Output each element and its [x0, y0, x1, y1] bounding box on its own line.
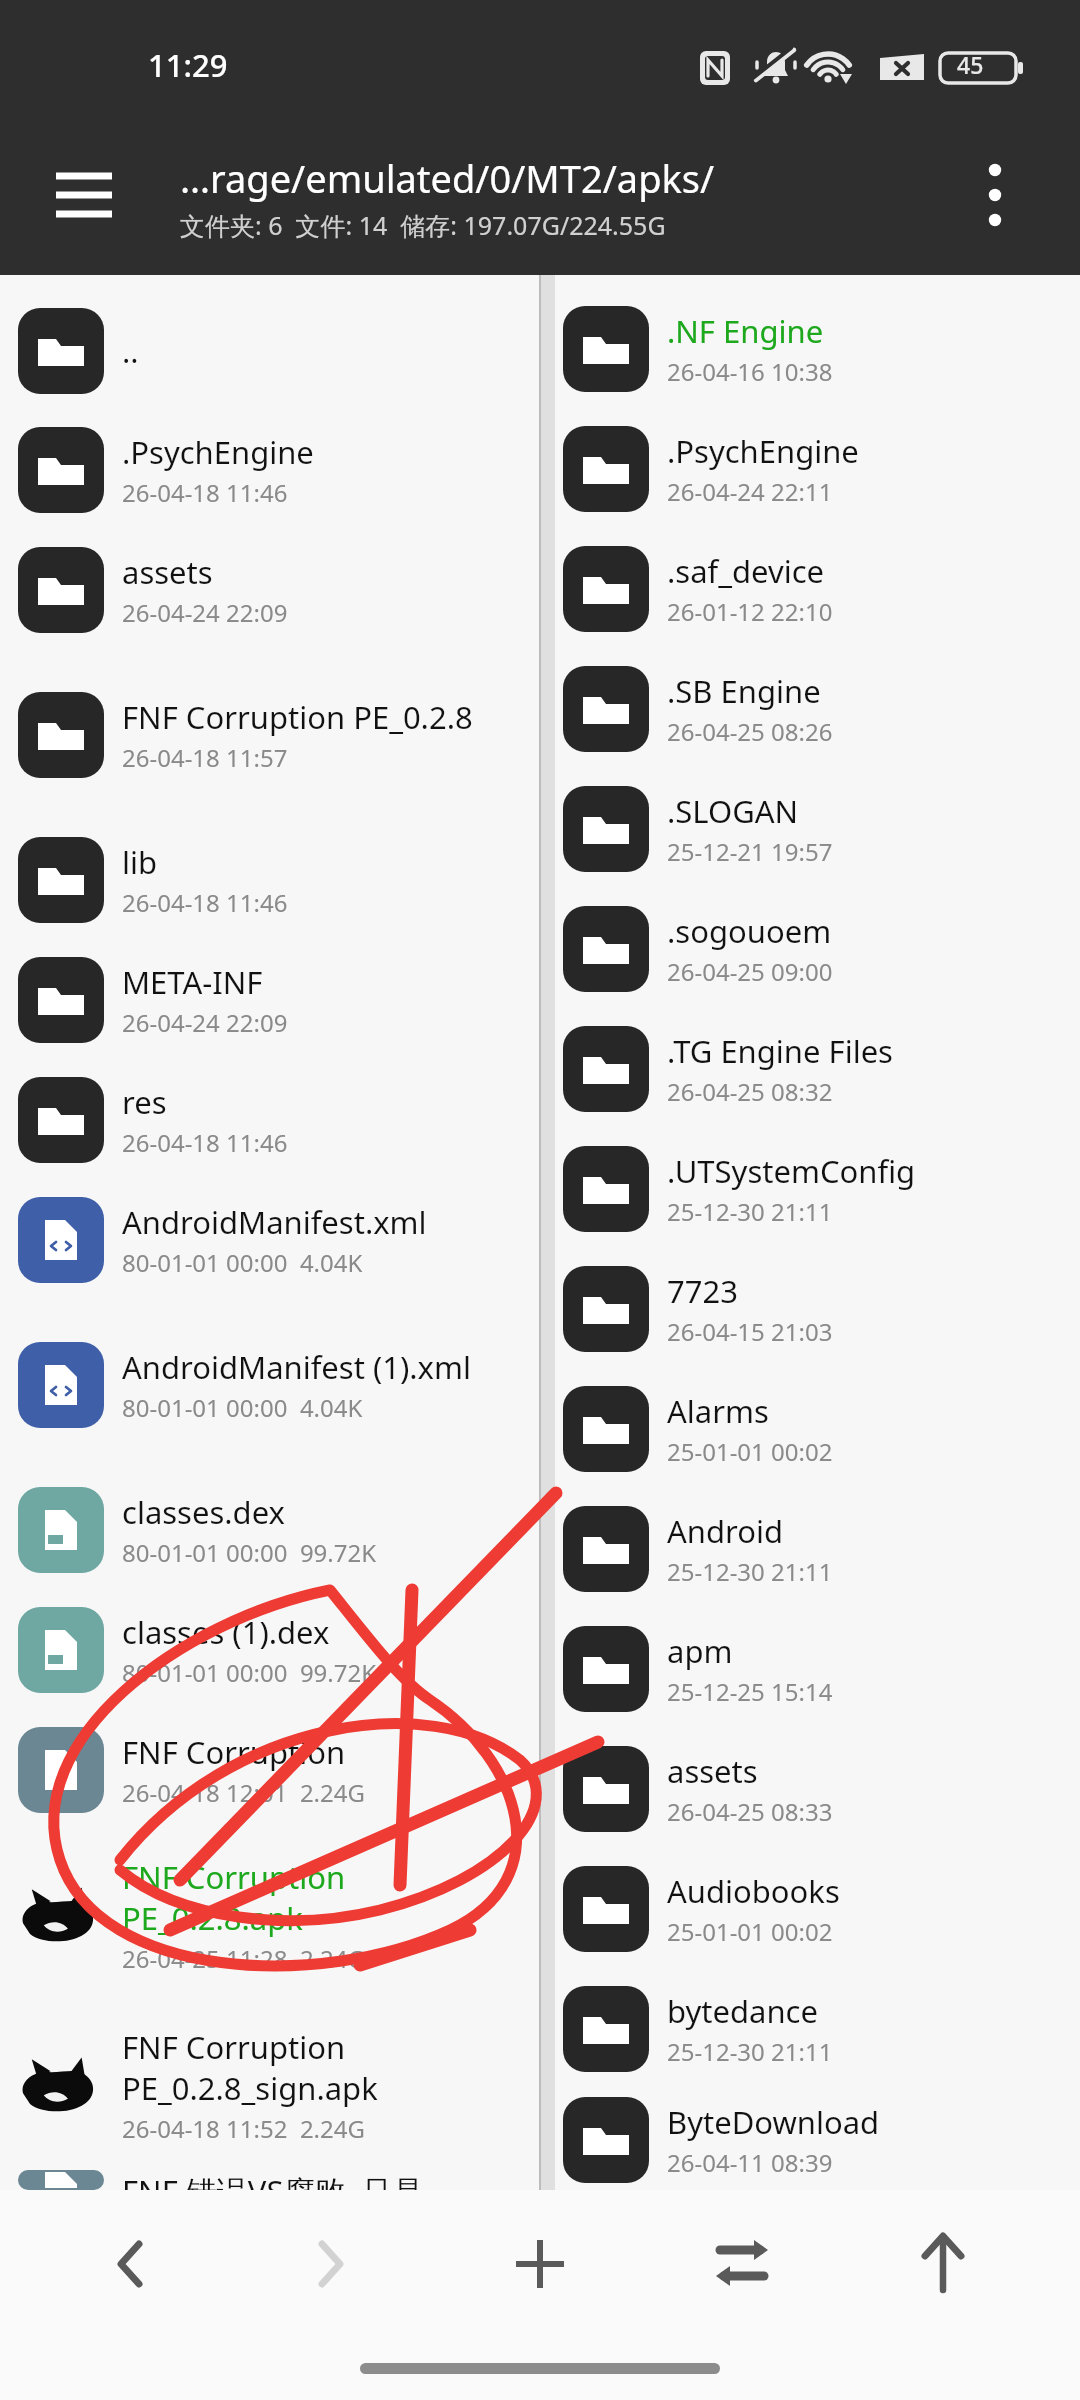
button[interactable]: FNF Corruption PE_0.2.8.apk [0, 1830, 539, 2000]
staticText: 26-04-18 12:01 2.24G [122, 1776, 365, 1809]
staticText: .SLOGAN [667, 790, 799, 832]
staticText: 45 [957, 49, 984, 80]
staticText: .saf_device [667, 550, 825, 592]
button[interactable]: res [0, 1060, 539, 1180]
button[interactable]: More options [950, 150, 1040, 240]
button[interactable]: META-INF [0, 940, 539, 1060]
staticText: .sogouoem [667, 910, 832, 952]
staticText: res [122, 1081, 167, 1123]
button[interactable]: .SB Engine [541, 649, 1080, 769]
button[interactable]: assets [0, 530, 539, 650]
button[interactable]: Forward [273, 2190, 403, 2330]
staticText: 80-01-01 00:00 4.04K [122, 1246, 363, 1279]
staticText: 80-01-01 00:00 99.72K [122, 1536, 377, 1569]
button[interactable]: .TG Engine Files [541, 1009, 1080, 1129]
button[interactable]: 7723 [541, 1249, 1080, 1369]
staticText: apm [667, 1630, 733, 1672]
staticText: 26-04-25 09:00 [667, 955, 833, 988]
button[interactable]: .saf_device [541, 529, 1080, 649]
button[interactable]: classes.dex [0, 1470, 539, 1590]
button[interactable]: apm [541, 1609, 1080, 1729]
staticText: .TG Engine Files [667, 1030, 893, 1072]
button[interactable]: .sogouoem [541, 889, 1080, 1009]
button[interactable]: Swap [677, 2190, 807, 2330]
staticText: Android [667, 1510, 784, 1552]
staticText: 文件夹: 6 文件: 14 储存: 197.07G/224.55G [180, 208, 666, 242]
button[interactable]: Alarms [541, 1369, 1080, 1489]
staticText: 26-04-11 08:39 [667, 2146, 833, 2179]
button[interactable]: FNF Corruption PE_0.2.8_sign.apk [0, 2000, 539, 2170]
staticText: 26-04-18 11:52 2.24G [122, 2112, 365, 2145]
staticText: FNF Corruption [122, 1731, 346, 1773]
button[interactable]: .PsychEngine [541, 409, 1080, 529]
button[interactable]: .. [0, 292, 539, 410]
staticText: 80-01-01 00:00 4.04K [122, 1391, 363, 1424]
button[interactable]: bytedance [541, 1969, 1080, 2089]
staticText: 26-04-18 11:46 [122, 476, 288, 509]
staticText: 25-01-01 00:02 [667, 1435, 833, 1468]
staticText: .SB Engine [667, 670, 821, 712]
staticText: 25-12-21 19:57 [667, 835, 833, 868]
staticText: 26-04-25 11:28 2.24G [122, 1942, 365, 1975]
button[interactable]: Android [541, 1489, 1080, 1609]
button[interactable]: Back [72, 2190, 202, 2330]
staticText: 25-12-30 21:11 [667, 2035, 833, 2068]
staticText: classes.dex [122, 1491, 285, 1533]
button[interactable]: lib [0, 820, 539, 940]
button[interactable]: Up [878, 2190, 1008, 2330]
staticText: AndroidManifest.xml [122, 1201, 427, 1243]
button[interactable]: classes (1).dex [0, 1590, 539, 1710]
staticText: FNF Corruption PE_0.2.8.apk [122, 1856, 529, 1939]
staticText: Audiobooks [667, 1870, 840, 1912]
staticText: .NF Engine [667, 310, 824, 352]
staticText: META-INF [122, 961, 263, 1003]
button[interactable]: AndroidManifest (1).xml [0, 1300, 539, 1470]
staticText: AndroidManifest (1).xml [122, 1346, 471, 1388]
button[interactable]: Audiobooks [541, 1849, 1080, 1969]
button[interactable]: assets [541, 1729, 1080, 1849]
staticText: .PsychEngine [122, 431, 314, 473]
button[interactable]: ByteDownload [541, 2089, 1080, 2190]
staticText: 26-04-18 11:57 [122, 741, 288, 774]
staticText: 25-01-01 00:02 [667, 1915, 833, 1948]
button[interactable]: .PsychEngine [0, 410, 539, 530]
staticText: FNF Corruption PE_0.2.8_sign.apk [122, 2026, 529, 2109]
staticText: FNF Corruption PE_0.2.8 [122, 696, 473, 738]
staticText: assets [667, 1750, 758, 1792]
button[interactable]: New [475, 2190, 605, 2330]
staticText: .UTSystemConfig [667, 1150, 916, 1192]
staticText: Alarms [667, 1390, 769, 1432]
button[interactable]: .SLOGAN [541, 769, 1080, 889]
staticText: .PsychEngine [667, 430, 859, 472]
button[interactable]: FNF Corruption PE_0.2.8 [0, 650, 539, 820]
staticText: 25-12-30 21:11 [667, 1555, 833, 1588]
button[interactable]: .NF Engine [541, 289, 1080, 409]
staticText: …rage/emulated/0/MT2/apks/ [180, 152, 715, 204]
button[interactable]: FNF 错误VS腐败 只是 [0, 2170, 539, 2190]
staticText: 26-04-18 11:46 [122, 886, 288, 919]
staticText: 26-04-15 21:03 [667, 1315, 833, 1348]
staticText: FNF 错误VS腐败 只是 [122, 2170, 424, 2190]
staticText: 26-04-24 22:11 [667, 475, 833, 508]
staticText: 26-04-24 22:09 [122, 596, 288, 629]
staticText: .. [122, 330, 139, 372]
staticText: 26-04-25 08:33 [667, 1795, 833, 1828]
staticText: assets [122, 551, 213, 593]
staticText: 26-04-24 22:09 [122, 1006, 288, 1039]
staticText: 11:29 [148, 44, 228, 86]
staticText: 26-01-12 22:10 [667, 595, 833, 628]
staticText: 80-01-01 00:00 99.72K [122, 1656, 377, 1689]
staticText: 26-04-25 08:26 [667, 715, 833, 748]
staticText: classes (1).dex [122, 1611, 330, 1653]
staticText: bytedance [667, 1990, 818, 2032]
button[interactable]: AndroidManifest.xml [0, 1180, 539, 1300]
button[interactable]: .UTSystemConfig [541, 1129, 1080, 1249]
button[interactable]: FNF Corruption [0, 1710, 539, 1830]
staticText: 25-12-25 15:14 [667, 1675, 833, 1708]
staticText: 26-04-16 10:38 [667, 355, 833, 388]
staticText: ByteDownload [667, 2101, 880, 2143]
button[interactable]: Menu [30, 150, 140, 240]
staticText: 7723 [667, 1270, 738, 1312]
staticText: lib [122, 841, 158, 883]
staticText: 26-04-25 08:32 [667, 1075, 833, 1108]
